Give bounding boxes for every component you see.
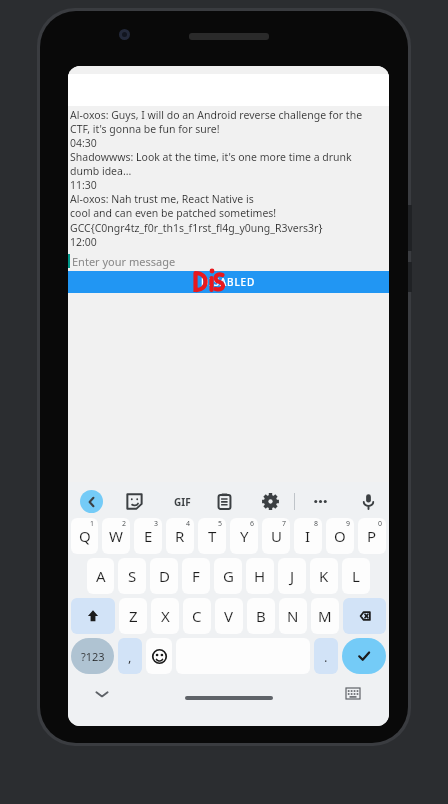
button[interactable]: Enter [342, 638, 386, 674]
button[interactable]: GIF [169, 494, 195, 509]
staticText: , [128, 648, 132, 666]
staticText: P [367, 526, 377, 546]
staticText: Shadowwws: Look at the time, it's one mo… [70, 150, 352, 178]
button[interactable]: Q [71, 518, 98, 554]
staticText: M [318, 606, 332, 626]
staticText: B [256, 606, 266, 626]
button[interactable]: Clipboard [216, 493, 233, 510]
staticText: GIF [174, 495, 191, 509]
button[interactable]: J [278, 558, 306, 594]
staticText: Al-oxos: Nah trust me, React Native is c… [70, 192, 323, 235]
button[interactable]: B [247, 598, 275, 634]
staticText: 3 [154, 519, 159, 529]
button[interactable]: , [118, 638, 142, 674]
button[interactable]: V [215, 598, 243, 634]
button[interactable]: Y [230, 518, 258, 554]
staticText: 2 [122, 519, 127, 529]
button[interactable]: M [311, 598, 339, 634]
staticText: D [159, 566, 170, 586]
button[interactable]: C [183, 598, 211, 634]
staticText: N [287, 606, 299, 626]
staticText: O [334, 526, 346, 546]
staticText: R [175, 526, 185, 546]
button[interactable]: S [118, 558, 146, 594]
staticText: Q [79, 526, 91, 546]
button[interactable]: U [262, 518, 290, 554]
staticText: U [271, 526, 282, 546]
button[interactable]: Hide keyboard [94, 688, 110, 700]
staticText: T [208, 526, 217, 546]
button[interactable]: N [279, 598, 307, 634]
button[interactable]: ?123 [71, 638, 114, 674]
button[interactable]: T [198, 518, 226, 554]
staticText: 7 [282, 519, 287, 529]
button[interactable]: F [182, 558, 210, 594]
button[interactable]: Back [80, 490, 103, 513]
button[interactable]: K [310, 558, 338, 594]
staticText: 4 [186, 519, 191, 529]
staticText: 5 [218, 519, 223, 529]
button[interactable]: L [342, 558, 370, 594]
button[interactable]: Emoji [146, 638, 172, 674]
button[interactable]: R [166, 518, 194, 554]
button[interactable]: Z [119, 598, 147, 634]
button[interactable]: G [214, 558, 242, 594]
staticText: V [224, 606, 234, 626]
staticText: 6 [250, 519, 255, 529]
staticText: 04:30 [70, 136, 97, 150]
staticText: Enter your message [72, 254, 176, 269]
staticText: F [192, 566, 200, 586]
button[interactable]: Stickers [126, 493, 143, 510]
button[interactable]: I [294, 518, 322, 554]
button[interactable]: More [312, 493, 329, 510]
staticText: . [324, 648, 328, 666]
button[interactable]: DISABLED [68, 271, 389, 293]
staticText: Z [129, 606, 138, 626]
button[interactable]: A [87, 558, 114, 594]
button[interactable]: . [314, 638, 338, 674]
button[interactable]: E [134, 518, 162, 554]
staticText: L [352, 566, 360, 586]
staticText: G [223, 566, 234, 586]
button[interactable]: X [151, 598, 179, 634]
staticText: DISABLED [201, 275, 256, 289]
staticText: 11:30 [70, 178, 97, 192]
staticText: S [128, 566, 137, 586]
staticText: E [144, 526, 153, 546]
button[interactable]: Shift [71, 598, 115, 634]
staticText: C [192, 606, 202, 626]
button[interactable]: D [150, 558, 178, 594]
staticText: Y [240, 526, 249, 546]
button[interactable]: H [246, 558, 274, 594]
staticText: I [305, 526, 311, 546]
staticText: X [161, 606, 170, 626]
staticText: K [319, 566, 329, 586]
staticText: J [290, 566, 295, 586]
staticText: 12:00 [70, 235, 97, 249]
staticText: 1 [90, 519, 95, 529]
staticText: 0 [378, 519, 383, 529]
button[interactable]: Settings [262, 493, 279, 510]
staticText: 9 [346, 519, 351, 529]
staticText: ?123 [81, 649, 105, 664]
staticText: 8 [314, 519, 319, 529]
button[interactable]: Voice input [360, 493, 377, 510]
button[interactable]: W [102, 518, 130, 554]
button[interactable]: Backspace [343, 598, 386, 634]
staticText: A [96, 566, 106, 586]
button[interactable]: O [326, 518, 354, 554]
staticText: W [109, 526, 123, 546]
staticText: H [254, 566, 266, 586]
button[interactable]: Switch keyboard [346, 688, 360, 699]
staticText: Al-oxos: Guys, I will do an Android reve… [70, 108, 363, 136]
button[interactable]: P [358, 518, 386, 554]
